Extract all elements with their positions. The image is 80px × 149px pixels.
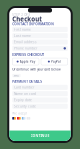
staticText: CONTACT INFORMATION: [12, 22, 54, 26]
button[interactable]: PayPal: [41, 58, 68, 65]
staticText: STEP 2 OF 3: [12, 13, 30, 17]
staticText: Expiry date: [14, 98, 32, 102]
button[interactable]: Phone number: [12, 46, 68, 51]
staticText: PayPal: [51, 60, 61, 64]
button[interactable]: Expiry date: [12, 97, 68, 102]
staticText: EXPRESS CHECKOUT: [12, 52, 44, 57]
button[interactable]: Security code: [12, 104, 68, 109]
button[interactable]: CONTINUE: [9, 130, 71, 141]
staticText: First name: [14, 27, 31, 32]
staticText: We accept: [12, 111, 27, 115]
staticText: Apple Pay: [20, 60, 35, 64]
staticText: Checkout: [12, 15, 42, 23]
button[interactable]: Email address: [12, 39, 68, 45]
staticText: PAYMENT DETAILS: [12, 79, 42, 84]
staticText: Last name: [14, 34, 31, 38]
staticText: CONTINUE: [30, 133, 49, 138]
button[interactable]: First name: [12, 27, 68, 32]
staticText: Security code: [14, 104, 36, 108]
button[interactable]: Name on card: [12, 91, 68, 96]
staticText: Or continue with your card below: [12, 67, 60, 71]
button[interactable]: Apple Pay: [12, 58, 39, 65]
staticText: Saved: [13, 74, 19, 77]
staticText: Email address: [14, 40, 37, 44]
button[interactable]: Card number: [12, 85, 68, 90]
button[interactable]: Last name: [12, 33, 68, 38]
staticText: Card number: [14, 85, 34, 90]
staticText: Phone number: [14, 46, 37, 51]
staticText: Name on card: [14, 91, 36, 96]
